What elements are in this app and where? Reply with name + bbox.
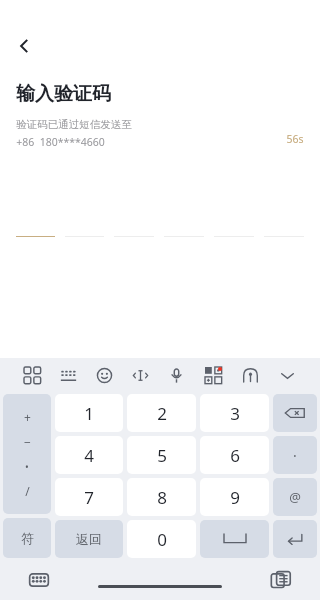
button[interactable]: Emoji (86, 358, 122, 392)
staticText: / (25, 483, 30, 499)
button[interactable]: 8 (127, 478, 196, 516)
button[interactable]: 符 (3, 518, 51, 558)
button[interactable] (65, 215, 104, 237)
button[interactable]: Back (6, 28, 42, 64)
staticText: · (293, 446, 297, 465)
button[interactable]: 4 (55, 436, 123, 474)
button[interactable]: 0 (127, 520, 196, 558)
button[interactable]: 9 (200, 478, 269, 516)
button[interactable]: Enter (273, 520, 317, 558)
staticText: 返回 (76, 531, 102, 547)
button[interactable]: Scan code (195, 358, 232, 392)
button[interactable]: 6 (200, 436, 269, 474)
staticText: 2 (157, 402, 167, 425)
staticText: − (24, 434, 31, 450)
button[interactable]: 5 (127, 436, 196, 474)
staticText: 3 (230, 402, 240, 425)
button[interactable]: Clipboard (266, 565, 296, 595)
staticText: +86 180****4660 (16, 135, 105, 149)
button[interactable]: Switch keyboard (24, 565, 54, 595)
staticText: + (24, 409, 31, 425)
staticText: 符 (21, 530, 34, 546)
button[interactable]: 返回 (55, 520, 123, 558)
button[interactable] (214, 215, 254, 237)
staticText: 验证码已通过短信发送至 (16, 118, 132, 131)
button[interactable]: 56s (286, 118, 304, 146)
button[interactable] (264, 215, 304, 237)
button[interactable]: Keyboard (50, 358, 86, 392)
button[interactable]: @ (273, 478, 317, 516)
button[interactable]: Voice input (158, 358, 195, 392)
staticText: 7 (84, 486, 94, 509)
button[interactable]: 1 (55, 394, 123, 432)
button[interactable]: 7 (55, 478, 123, 516)
button[interactable] (114, 215, 154, 237)
staticText: 9 (230, 486, 240, 509)
button[interactable]: Text cursor (122, 358, 158, 392)
staticText: 输入验证码 (16, 82, 111, 106)
staticText: 1 (84, 402, 94, 425)
staticText: @ (289, 488, 301, 506)
button[interactable]: Backspace (273, 394, 317, 432)
staticText: 0 (157, 528, 167, 551)
button[interactable]: Hide keyboard (269, 358, 306, 392)
button[interactable]: Keyboard layouts (14, 358, 50, 392)
staticText: 4 (84, 444, 94, 467)
staticText: 5 (157, 444, 167, 467)
button[interactable] (164, 215, 204, 237)
button[interactable]: Space (200, 520, 269, 558)
staticText: • (25, 460, 29, 474)
staticText: 8 (157, 486, 167, 509)
button[interactable]: 2 (127, 394, 196, 432)
staticText: 6 (230, 444, 240, 467)
button[interactable]: Account (232, 358, 269, 392)
button[interactable] (16, 215, 55, 237)
button[interactable]: Operators (3, 394, 51, 514)
button[interactable]: . (273, 436, 317, 474)
button[interactable]: 3 (200, 394, 269, 432)
staticText: 56s (286, 132, 304, 146)
